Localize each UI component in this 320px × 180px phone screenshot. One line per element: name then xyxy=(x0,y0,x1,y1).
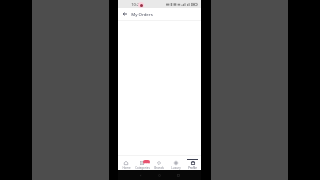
button[interactable]: NEW xyxy=(134,155,150,170)
button[interactable]: Profile xyxy=(184,155,201,170)
staticText: My Orders xyxy=(131,11,153,17)
button[interactable]: Recent apps xyxy=(175,172,182,179)
staticText: Luxury xyxy=(171,166,181,170)
button[interactable]: Home xyxy=(156,172,163,179)
staticText: Home xyxy=(122,166,131,170)
button[interactable]: Brands xyxy=(150,155,167,170)
staticText: Profile xyxy=(188,166,197,170)
button[interactable]: Home xyxy=(118,155,134,170)
staticText: 10:26 xyxy=(131,2,142,8)
staticText: Brands xyxy=(154,166,164,170)
staticText: NEW xyxy=(144,161,150,164)
button[interactable]: Back xyxy=(121,10,128,17)
staticText: Categories xyxy=(135,166,150,170)
button[interactable]: Luxury xyxy=(167,155,184,170)
button[interactable]: Back xyxy=(137,172,144,179)
